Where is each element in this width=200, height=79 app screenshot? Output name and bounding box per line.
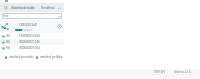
button[interactable]: Find (2, 13, 62, 19)
staticText: 6% (6, 46, 10, 50)
button[interactable]: 6% (0, 45, 64, 51)
staticText: view find_june order (9, 55, 33, 59)
button[interactable]: 8% (0, 39, 64, 45)
staticText: 13/05/2023 16:47 (19, 23, 37, 27)
staticText: 4% (6, 34, 10, 38)
button[interactable]: view find_jun fallup (36, 55, 63, 59)
button[interactable]: view find_june order (5, 55, 33, 59)
staticText: 30/05/2023 11:04 (19, 46, 40, 50)
staticText: REST API (154, 70, 165, 74)
button[interactable]: 4% (0, 33, 64, 39)
staticText: Histórico de balde (11, 6, 35, 10)
button[interactable]: Settings (57, 24, 62, 29)
staticText: Find (3, 14, 9, 18)
button[interactable]: 13/05/2023 16:47 (0, 20, 64, 33)
staticText: Andrino 2.2.5 (174, 70, 191, 74)
other: Collapse (58, 7, 61, 10)
staticText: 30/05/2023 11:45 (19, 40, 40, 44)
staticText: 13/05/2023 16:45 (19, 34, 40, 38)
staticText: 8% (6, 40, 10, 44)
staticText: view find_jun fallup (40, 55, 63, 59)
staticText: Tendência (41, 6, 55, 10)
button[interactable]: Tendência (41, 6, 61, 10)
button[interactable]: Menu (4, 6, 8, 10)
